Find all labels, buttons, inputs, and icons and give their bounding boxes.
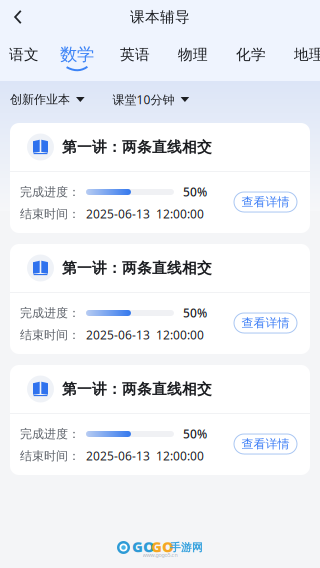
staticText: 语文: [9, 45, 39, 63]
button[interactable]: Back: [0, 0, 36, 34]
staticText: 课本辅导: [130, 8, 190, 26]
staticText: 英语: [120, 45, 150, 63]
button[interactable]: 查看详情: [234, 313, 297, 333]
staticText: 50%: [183, 305, 207, 321]
staticText: 2025-06-13 12:00:00: [86, 206, 204, 222]
staticText: 50%: [183, 426, 207, 442]
staticText: GO: [132, 537, 155, 556]
staticText: 完成进度：: [20, 427, 80, 441]
staticText: 2025-06-13 12:00:00: [86, 448, 204, 464]
staticText: 50%: [183, 184, 207, 200]
staticText: 手游网: [170, 541, 203, 554]
staticText: 查看详情: [241, 316, 289, 330]
button[interactable]: 物理: [164, 34, 222, 81]
button[interactable]: 数学: [48, 34, 106, 81]
staticText: 第一讲：两条直线相交: [62, 138, 212, 156]
button[interactable]: 化学: [222, 34, 280, 81]
staticText: 查看详情: [241, 437, 289, 451]
staticText: 化学: [236, 45, 266, 63]
button[interactable]: 查看详情: [234, 434, 297, 454]
staticText: www.gogo5.cn: [142, 551, 177, 559]
staticText: 数学: [60, 44, 94, 65]
staticText: 2025-06-13 12:00:00: [86, 327, 204, 343]
staticText: 第一讲：两条直线相交: [62, 259, 212, 277]
staticText: 完成进度：: [20, 185, 80, 199]
staticText: 课堂10分钟: [113, 91, 175, 107]
staticText: GO: [151, 537, 174, 556]
staticText: 物理: [178, 45, 208, 63]
staticText: 完成进度：: [20, 306, 80, 320]
staticText: 结束时间：: [20, 327, 80, 342]
staticText: 结束时间：: [20, 448, 80, 463]
staticText: 创新作业本: [10, 92, 70, 107]
button[interactable]: 课堂10分钟: [113, 91, 189, 107]
button[interactable]: 英语: [106, 34, 164, 81]
button[interactable]: 语文: [0, 34, 48, 81]
staticText: 第一讲：两条直线相交: [62, 380, 212, 398]
button[interactable]: 创新作业本: [10, 92, 85, 107]
staticText: 结束时间：: [20, 206, 80, 221]
staticText: 地理: [294, 45, 320, 63]
button[interactable]: 地理: [280, 34, 320, 81]
button[interactable]: 查看详情: [234, 192, 297, 212]
staticText: 查看详情: [241, 195, 289, 209]
